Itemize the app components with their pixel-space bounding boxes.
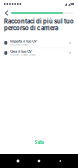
staticText: Crea il tuo CV <box>10 49 31 53</box>
button[interactable]: Home <box>31 154 47 168</box>
staticText: Raccontaci di più sul tuo percorso di ca… <box>4 18 74 31</box>
button[interactable]: Indietro <box>2 8 11 18</box>
button[interactable]: Panoramica <box>10 154 26 168</box>
button[interactable]: Importa il tuo CV <box>0 38 78 48</box>
staticText: Salta <box>34 140 43 145</box>
staticText: Guidato passo passo <box>10 53 36 56</box>
button[interactable]: Indietro <box>52 154 68 168</box>
button[interactable]: Crea il tuo CV <box>0 48 78 58</box>
staticText: In pochi minuti <box>10 43 28 46</box>
staticText: Importa il tuo CV <box>10 39 36 43</box>
button[interactable]: Salta <box>0 138 78 147</box>
